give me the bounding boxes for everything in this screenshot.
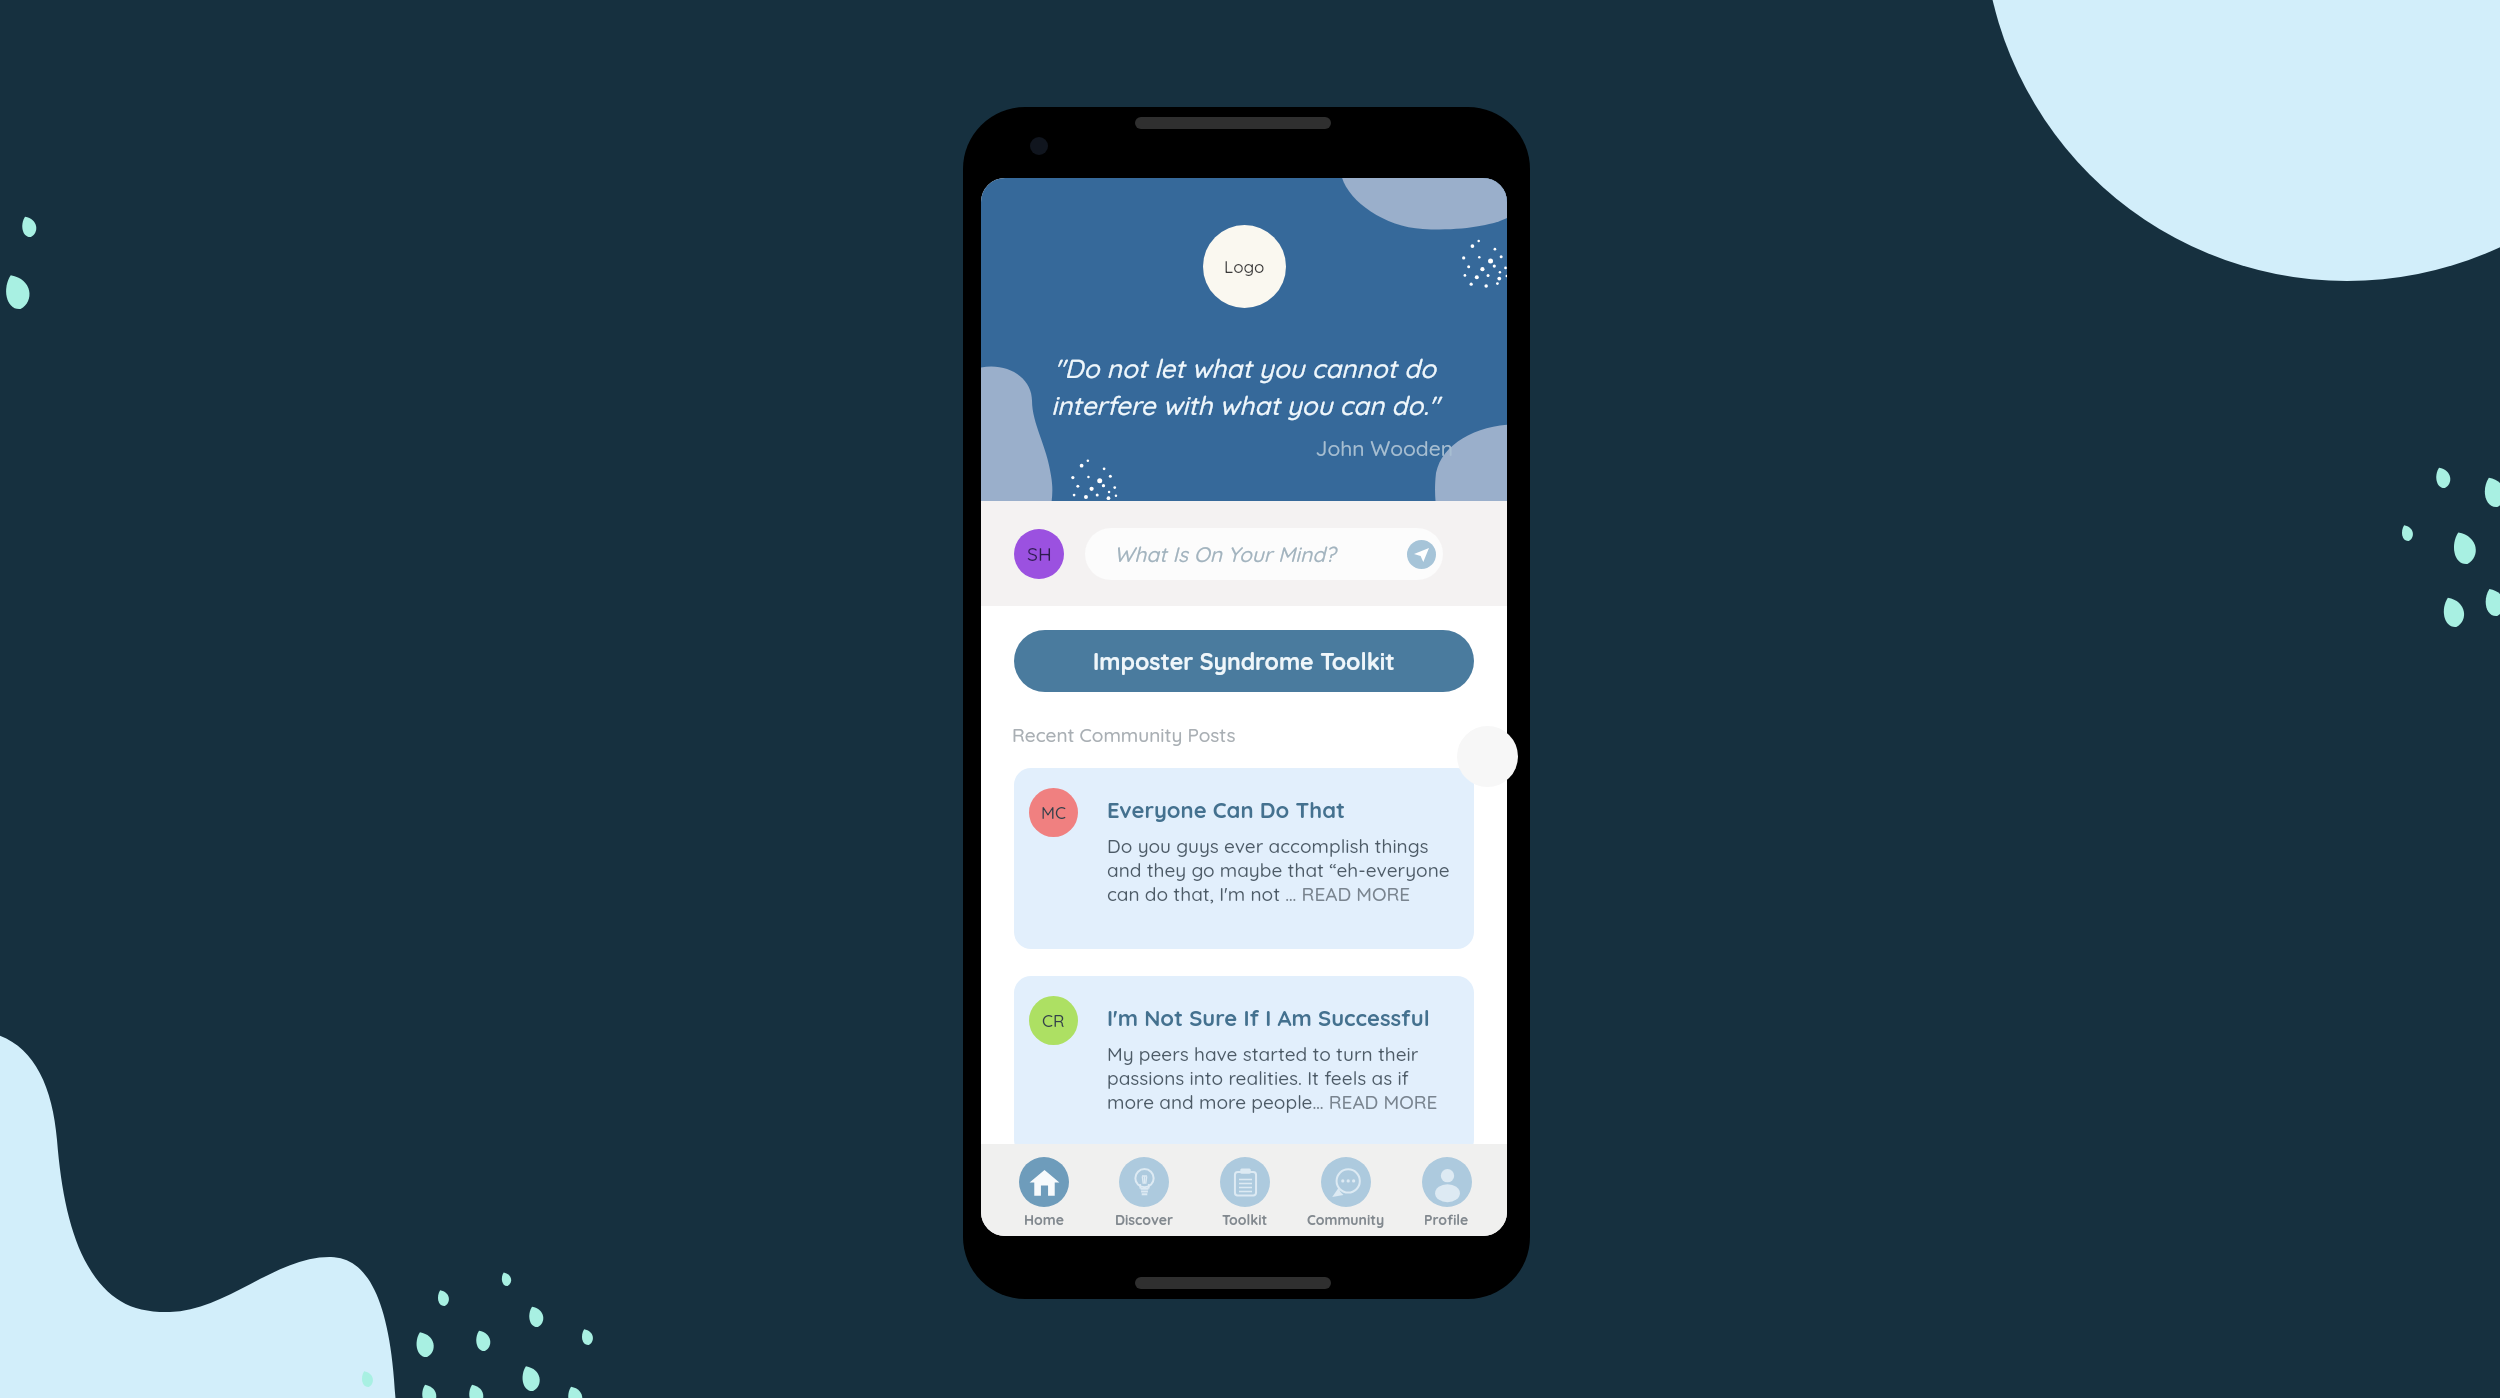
button[interactable]: Profile bbox=[1396, 1157, 1497, 1229]
staticText: John Wooden bbox=[1013, 435, 1453, 461]
staticText: Everyone Can Do That bbox=[1107, 796, 1345, 824]
button[interactable]: CR bbox=[1014, 976, 1474, 1157]
staticText: Do you guys ever accomplish things and t… bbox=[1107, 834, 1450, 906]
staticText: CR bbox=[1042, 1010, 1065, 1031]
staticText: Recent Community Posts bbox=[1012, 723, 1236, 747]
button[interactable]: Community bbox=[1295, 1157, 1396, 1229]
button[interactable]: Toolkit bbox=[1194, 1157, 1295, 1229]
staticText: My peers have started to turn their pass… bbox=[1107, 1042, 1438, 1114]
staticText: Logo bbox=[1224, 256, 1265, 277]
staticText: Toolkit bbox=[1222, 1211, 1268, 1229]
staticText: Profile bbox=[1424, 1211, 1469, 1229]
staticText: What Is On Your Mind? bbox=[1114, 541, 1336, 567]
button[interactable]: What Is On Your Mind? bbox=[1085, 528, 1443, 580]
button[interactable]: MC bbox=[1014, 768, 1474, 949]
staticText: I'm Not Sure If I Am Successful bbox=[1107, 1004, 1430, 1032]
button[interactable]: Discover bbox=[1094, 1157, 1194, 1229]
staticText: "Do not let what you cannot do interfere… bbox=[1013, 352, 1477, 421]
button[interactable]: Home bbox=[994, 1157, 1094, 1229]
staticText: Imposter Syndrome Toolkit bbox=[1093, 647, 1395, 676]
staticText: Home bbox=[1024, 1211, 1064, 1229]
other: Send bbox=[1407, 540, 1436, 569]
button[interactable]: Imposter Syndrome Toolkit bbox=[1014, 630, 1474, 692]
staticText: SH bbox=[1027, 542, 1052, 566]
button[interactable]: SH bbox=[1014, 529, 1064, 579]
staticText: Discover bbox=[1115, 1211, 1174, 1229]
staticText: Community bbox=[1307, 1211, 1385, 1229]
staticText: MC bbox=[1041, 802, 1066, 823]
